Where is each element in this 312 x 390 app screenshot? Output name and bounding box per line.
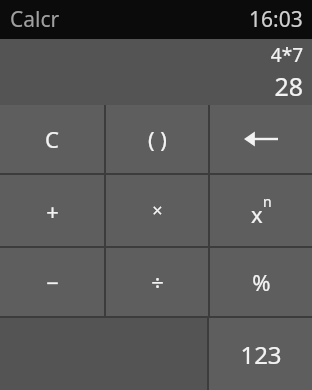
staticText: 28 — [274, 69, 303, 103]
staticText: 123 — [240, 338, 282, 371]
staticText: n — [263, 192, 272, 211]
staticText: − — [46, 267, 59, 297]
button[interactable]: + — [0, 175, 104, 246]
staticText: 4*7 — [270, 42, 303, 68]
button[interactable]: C — [0, 105, 104, 173]
button[interactable]: ÷ — [106, 248, 208, 316]
button[interactable]: % — [210, 248, 312, 316]
staticText: C — [45, 124, 59, 154]
staticText: × — [152, 198, 163, 223]
button[interactable]: Backspace — [210, 105, 312, 173]
staticText: ÷ — [151, 267, 164, 297]
staticText: Calcr — [10, 5, 60, 34]
button[interactable]: ( ) — [106, 105, 208, 173]
staticText: % — [252, 267, 271, 297]
button[interactable]: 4*7 — [0, 39, 312, 105]
button[interactable]: × — [106, 175, 208, 246]
button[interactable]: − — [0, 248, 104, 316]
button[interactable]: 123 — [209, 318, 312, 390]
staticText: 16:03 — [249, 5, 303, 34]
button[interactable]: x — [210, 175, 312, 246]
staticText: x — [251, 199, 263, 229]
staticText: + — [46, 196, 59, 226]
staticText: ( ) — [148, 124, 167, 154]
